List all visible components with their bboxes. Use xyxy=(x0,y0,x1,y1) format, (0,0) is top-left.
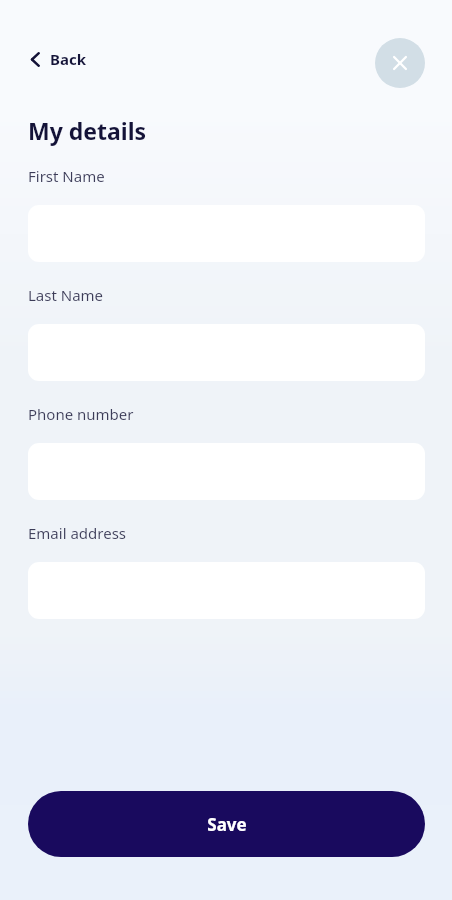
staticText: Phone number xyxy=(28,404,134,424)
staticText: Last Name xyxy=(28,285,104,305)
button[interactable]: Save xyxy=(28,791,425,857)
staticText: First Name xyxy=(28,166,105,186)
staticText: Back xyxy=(50,49,87,69)
staticText: Email address xyxy=(28,523,127,543)
button[interactable]: Back xyxy=(24,45,93,73)
button[interactable]: Close xyxy=(375,38,425,88)
staticText: Save xyxy=(207,813,247,836)
staticText: My details xyxy=(28,115,147,146)
